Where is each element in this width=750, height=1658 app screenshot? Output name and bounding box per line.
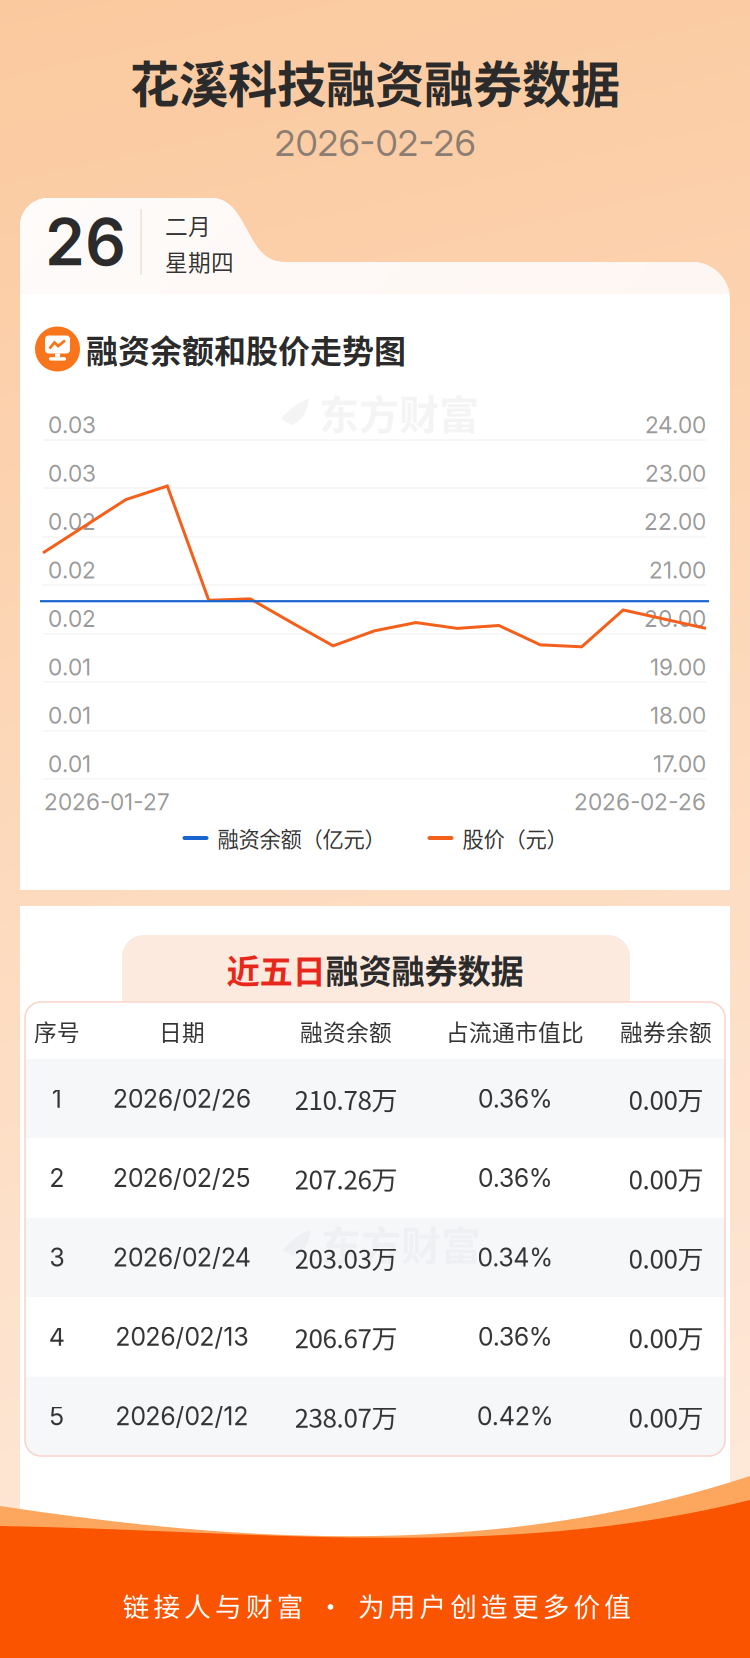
staticText: 2026/02/25 [113,1163,251,1193]
staticText: 占流通市值比 [446,1015,584,1047]
staticText: 融资余额（亿元） [217,823,385,853]
staticText: 18.00 [650,702,706,729]
staticText: 2026/02/24 [113,1243,251,1272]
staticText: 东方财富 [319,383,479,441]
staticText: 2026-02-26 [574,788,706,816]
staticText: 4 [49,1322,65,1352]
staticText: 0.01 [48,653,91,681]
staticText: 近五日 [226,945,325,993]
staticText: 2 [49,1163,64,1193]
staticText: 日期 [159,1015,205,1047]
staticText: 26 [45,203,126,281]
staticText: 0.00万 [628,1080,703,1117]
staticText: 19.00 [650,653,706,681]
staticText: 融资余额和股价走势图 [86,326,406,372]
staticText: 东方财富 [321,1214,481,1272]
staticText: 链接人与财富 · 为用户创造更多价值 [123,1586,631,1624]
staticText: 0.42% [477,1401,553,1431]
staticText: 20.00 [644,605,706,632]
staticText: 2026-01-27 [44,788,170,816]
staticText: 融资融券数据 [325,945,523,993]
staticText: 二月 [165,209,211,241]
staticText: 0.03 [48,411,96,439]
staticText: 0.02 [48,508,96,535]
staticText: 0.02 [48,557,96,584]
staticText: 0.00万 [628,1239,703,1276]
staticText: 0.36% [478,1322,552,1352]
staticText: 5 [49,1401,64,1431]
staticText: 股价（元） [462,823,567,853]
staticText: 0.00万 [628,1159,703,1197]
staticText: 花溪科技融资融券数据 [130,45,620,117]
staticText: 2026/02/13 [115,1322,248,1352]
staticText: 203.03万 [294,1239,397,1276]
staticText: 0.36% [478,1084,552,1114]
staticText: 2026/02/12 [115,1401,248,1431]
staticText: 0.00万 [628,1318,703,1356]
staticText: 0.03 [48,460,96,487]
staticText: 0.02 [48,605,96,632]
staticText: 0.34% [477,1243,552,1272]
staticText: 22.00 [644,508,706,535]
staticText: 23.00 [645,460,706,487]
staticText: 1 [52,1084,62,1114]
staticText: 2026-02-26 [274,121,475,165]
staticText: 0.00万 [628,1397,703,1435]
staticText: 0.01 [48,702,91,729]
staticText: 17.00 [653,750,706,778]
staticText: 2026/02/26 [113,1084,251,1114]
staticText: 21.00 [649,557,706,584]
staticText: 0.36% [478,1163,552,1193]
staticText: 24.00 [645,411,706,439]
staticText: 序号 [34,1015,80,1047]
staticText: 0.01 [48,750,91,778]
staticText: 融券余额 [620,1015,712,1047]
staticText: 207.26万 [294,1159,397,1197]
staticText: 星期四 [165,245,234,277]
staticText: 206.67万 [294,1318,397,1356]
staticText: 210.78万 [294,1080,397,1117]
staticText: 3 [49,1243,64,1272]
staticText: 融资余额 [300,1015,392,1047]
staticText: 238.07万 [294,1397,397,1435]
